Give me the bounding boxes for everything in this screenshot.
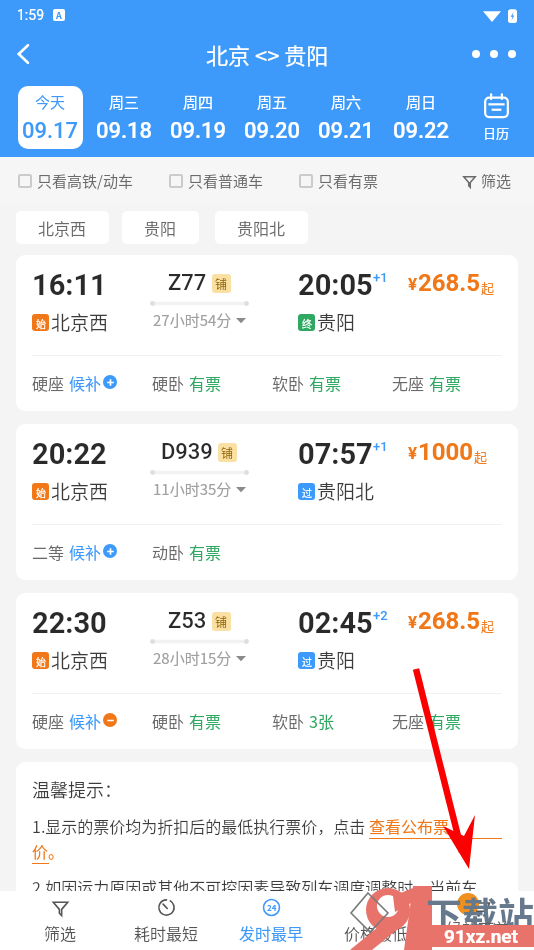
- staticText: 有票: [189, 709, 222, 732]
- staticText: 始: [36, 316, 46, 330]
- staticText: 价格最低: [344, 921, 409, 944]
- button[interactable]: 贵阳北: [215, 211, 308, 244]
- staticText: 日历: [483, 123, 510, 142]
- button[interactable]: 周六: [313, 86, 380, 149]
- staticText: 发时最早: [239, 921, 304, 944]
- staticText: +1: [373, 270, 388, 285]
- button[interactable]: 周五: [239, 86, 305, 149]
- staticText: 软卧: [272, 709, 305, 732]
- button[interactable]: 硬卧: [152, 364, 272, 400]
- staticText: 候补下单: [449, 921, 514, 944]
- staticText: 候补下单: [446, 916, 511, 939]
- staticText: 筛选: [44, 921, 77, 944]
- staticText: 筛选: [481, 170, 512, 192]
- staticText: 02:45: [298, 606, 373, 640]
- staticText: 贵阳: [144, 216, 177, 239]
- staticText: 价。: [32, 839, 65, 862]
- staticText: 09.18: [96, 118, 153, 144]
- button[interactable]: 贵阳: [122, 211, 199, 244]
- staticText: 硬卧: [152, 371, 185, 394]
- button[interactable]: 硬座: [32, 364, 152, 400]
- button[interactable]: Back: [0, 30, 48, 78]
- button[interactable]: 候补下单: [429, 891, 534, 950]
- staticText: 贵阳: [317, 308, 356, 336]
- staticText: 268.5: [418, 607, 481, 635]
- button[interactable]: 耗时最短: [113, 891, 219, 950]
- staticText: 下载站: [426, 887, 534, 939]
- staticText: 周五: [257, 91, 288, 113]
- staticText: 起: [481, 616, 495, 635]
- button[interactable]: 只看有票: [299, 170, 379, 192]
- button[interactable]: 软卧: [272, 364, 392, 400]
- staticText: 北京西: [51, 308, 109, 336]
- staticText: 28小时15分: [153, 647, 232, 669]
- staticText: 始: [36, 654, 46, 668]
- staticText: 24: [267, 902, 277, 914]
- staticText: 20:22: [32, 437, 107, 471]
- button[interactable]: 硬卧: [152, 702, 272, 738]
- staticText: 16:11: [32, 268, 107, 302]
- button[interactable]: 二等: [32, 533, 152, 569]
- button[interactable]: 24: [219, 891, 324, 950]
- staticText: 有票: [189, 540, 222, 563]
- staticText: +2: [373, 608, 388, 623]
- staticText: 22:30: [32, 606, 107, 640]
- button[interactable]: 北京西: [16, 211, 109, 244]
- staticText: 铺: [221, 444, 234, 461]
- staticText: 11小时35分: [153, 478, 232, 500]
- staticText: +1: [373, 439, 388, 454]
- staticText: 09.19: [170, 118, 227, 144]
- staticText: 软卧: [272, 371, 305, 394]
- staticText: 北京西: [51, 477, 109, 505]
- button[interactable]: 只看普通车: [169, 170, 264, 192]
- staticText: 只看有票: [318, 170, 379, 192]
- button[interactable]: 硬座: [32, 702, 152, 738]
- staticText: 268.5: [418, 269, 481, 297]
- staticText: 起: [474, 447, 488, 466]
- staticText: 91xz.net: [444, 925, 518, 947]
- button[interactable]: 软卧: [272, 702, 392, 738]
- staticText: 终: [302, 316, 312, 330]
- button[interactable]: 只看高铁/动车: [18, 170, 133, 192]
- staticText: 温馨提示：: [32, 776, 122, 802]
- staticText: 只看高铁/动车: [37, 170, 133, 192]
- staticText: Z77: [168, 270, 207, 296]
- button[interactable]: 日历: [458, 78, 534, 157]
- staticText: 铺: [215, 613, 228, 630]
- button[interactable]: More options: [468, 38, 520, 70]
- button[interactable]: 周日: [388, 86, 454, 149]
- button[interactable]: 无座: [392, 364, 512, 400]
- staticText: 1.显示的票价均为折扣后的最低执行票价，点击: [32, 814, 369, 837]
- staticText: 09.17: [22, 118, 79, 144]
- button[interactable]: 周三: [91, 86, 157, 149]
- button[interactable]: 无座: [392, 702, 512, 738]
- button[interactable]: 22:30: [16, 593, 518, 749]
- staticText: D939: [161, 439, 213, 465]
- staticText: 只看普通车: [188, 170, 264, 192]
- staticText: 候补: [69, 709, 102, 732]
- staticText: 硬卧: [152, 709, 185, 732]
- button[interactable]: 16:11: [16, 255, 518, 411]
- staticText: 无座: [392, 709, 425, 732]
- button[interactable]: 筛选: [463, 170, 534, 192]
- button[interactable]: 周四: [165, 86, 231, 149]
- staticText: 起: [481, 278, 495, 297]
- staticText: 有票: [429, 709, 462, 732]
- staticText: 始: [36, 485, 46, 499]
- button[interactable]: 今天: [18, 86, 83, 149]
- button[interactable]: 价格最低: [324, 891, 429, 950]
- staticText: 耗时最短: [134, 921, 199, 944]
- staticText: 候补: [69, 371, 102, 394]
- button[interactable]: 筛选: [7, 891, 113, 950]
- staticText: 1000: [418, 438, 474, 466]
- staticText: 有票: [309, 371, 342, 394]
- staticText: 北京 <> 贵阳: [206, 38, 329, 70]
- staticText: 20:05: [298, 268, 373, 302]
- staticText: 有票: [189, 371, 222, 394]
- button[interactable]: 动卧: [152, 533, 272, 569]
- staticText: 09.22: [393, 118, 450, 144]
- staticText: A: [56, 9, 62, 21]
- button[interactable]: 20:22: [16, 424, 518, 580]
- staticText: 今天: [35, 91, 66, 113]
- staticText: 周四: [183, 91, 214, 113]
